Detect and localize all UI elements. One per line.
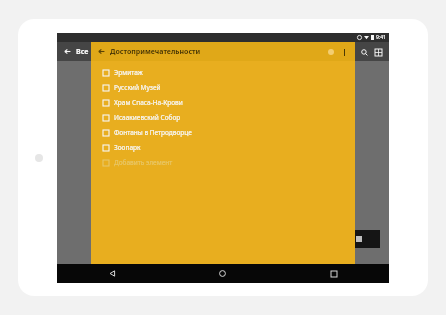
staticText: Все [76,47,89,57]
button[interactable]: Эрмитаж [91,65,355,80]
staticText: Храм Спаса-На-Крови [114,98,183,107]
staticText: 9:41 [376,34,386,41]
button[interactable]: Change colour [324,45,338,59]
button[interactable]: Selected item [350,230,380,248]
button[interactable]: Исаакиевский Собор [91,110,355,125]
staticText: Добавить элемент [114,158,173,167]
button[interactable]: Фонтаны в Петродворце [91,125,355,140]
button[interactable]: Русский Музей [91,80,355,95]
staticText: Русский Музей [114,83,161,92]
button[interactable]: Добавить элемент [91,155,355,170]
staticText: Исаакиевский Собор [114,113,181,122]
button[interactable]: Back [61,45,74,58]
staticText: Зоопарк [114,143,141,152]
button[interactable]: Home [167,264,278,283]
staticText: Достопримечательности [110,47,201,57]
button[interactable]: Храм Спаса-На-Крови [91,95,355,110]
staticText: Фонтаны в Петродворце [114,128,192,137]
button[interactable]: Search [357,45,371,59]
button[interactable]: Зоопарк [91,140,355,155]
button[interactable]: Grid view [371,45,385,59]
button[interactable]: Back [95,45,108,58]
button[interactable]: Recent apps [278,264,389,283]
staticText: Эрмитаж [114,68,143,77]
button[interactable]: More options [338,46,350,58]
button[interactable]: Back [57,264,167,283]
